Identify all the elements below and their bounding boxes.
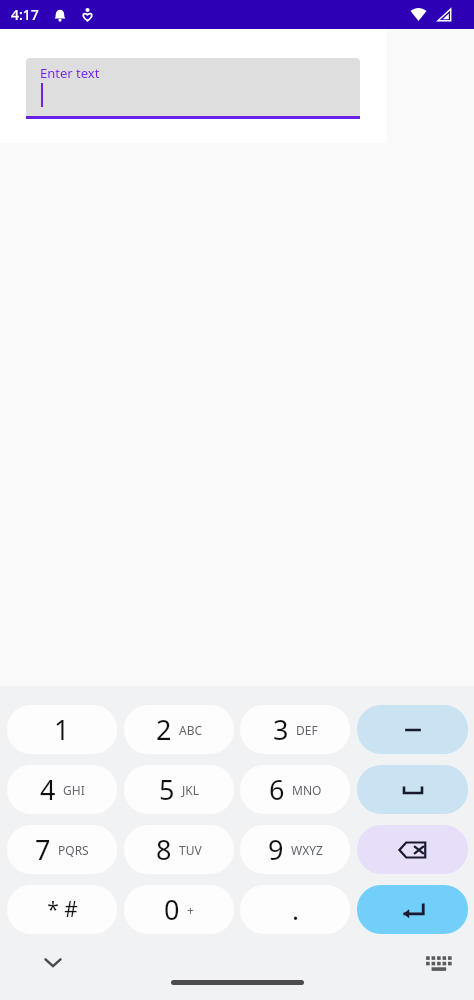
button[interactable]: 5 [124,765,234,814]
staticText: PQRS [58,842,89,858]
staticText: 2 [156,711,172,748]
button[interactable]: 3 [240,705,350,754]
staticText: GHI [63,782,85,798]
staticText: 9 [268,831,284,868]
button[interactable]: 8 [124,825,234,874]
button[interactable]: Switch keyboard [424,949,450,975]
staticText: 1 [54,711,70,748]
staticText: MNO [292,782,322,798]
staticText: WXYZ [291,842,323,858]
button[interactable]: 4 [7,765,117,814]
button[interactable]: Enter text [26,58,360,116]
staticText: 0 [164,891,180,928]
staticText: 8 [156,831,172,868]
staticText: 7 [35,831,51,868]
staticText: 3 [273,711,289,748]
staticText: * # [47,895,78,924]
staticText: 4 [40,771,56,808]
button[interactable]: Space [357,765,468,814]
staticText: 6 [269,771,285,808]
button[interactable]: Dash [357,705,468,754]
button[interactable]: 9 [240,825,350,874]
staticText: DEF [296,722,318,738]
button[interactable]: Backspace [357,825,468,874]
button[interactable]: 6 [240,765,350,814]
staticText: TUV [179,842,202,858]
button[interactable]: . [240,885,350,934]
button[interactable]: Hide keyboard [36,945,70,979]
staticText: 4:17 [11,5,39,24]
button[interactable]: Enter [357,885,468,934]
button[interactable]: 1 [7,705,117,754]
staticText: . [292,892,299,927]
staticText: + [187,902,194,918]
button[interactable]: 2 [124,705,234,754]
staticText: Enter text [40,64,100,82]
staticText: JKL [182,782,199,798]
button[interactable]: 0 [124,885,234,934]
button[interactable]: * # [7,885,117,934]
staticText: ABC [179,722,203,738]
staticText: 5 [159,771,175,808]
button[interactable]: 7 [7,825,117,874]
